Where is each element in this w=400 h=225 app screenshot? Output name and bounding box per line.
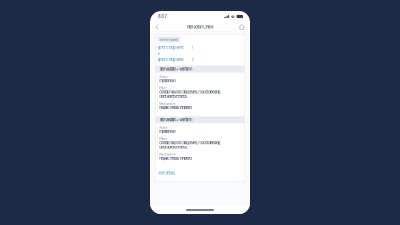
- staticText: generic drug name: [157, 45, 184, 50]
- staticText: hepatic metab. inhibited: [159, 156, 191, 161]
- staticText: generic drug name: [157, 57, 184, 62]
- staticText: monitor INR: [159, 129, 175, 134]
- staticText: Effect: [159, 137, 167, 141]
- staticText: atorvastatin + warfarin: [160, 67, 192, 72]
- staticText: Action: [159, 75, 168, 79]
- staticText: hepatic metab. inhibited: [159, 105, 191, 110]
- staticText: search query: [159, 37, 178, 41]
- staticText: 1: [192, 45, 194, 50]
- staticText: Effect: [159, 86, 167, 90]
- staticText: 2: [192, 57, 194, 62]
- staticText: atorvastatin + warfarin: [160, 117, 192, 122]
- staticText: Hide details: [157, 171, 175, 175]
- staticText: other adverse effects: [159, 145, 187, 149]
- staticText: +: [157, 51, 160, 56]
- staticText: monitor INR: [159, 78, 175, 83]
- button[interactable]: Home: [237, 22, 247, 32]
- staticText: Action: [159, 126, 168, 130]
- staticText: other adverse effects: [159, 94, 187, 99]
- button[interactable]: Hide details: [155, 164, 245, 181]
- staticText: combo may incr. drug levels, risk of ble…: [159, 90, 220, 94]
- staticText: combo may incr. drug levels, risk of ble…: [159, 140, 220, 145]
- staticText: Mechanism: [159, 102, 176, 106]
- button[interactable]: Back: [153, 22, 161, 32]
- staticText: Mechanism: [159, 152, 176, 156]
- staticText: 8:07: [158, 14, 166, 19]
- staticText: Interaction Check: [187, 24, 213, 29]
